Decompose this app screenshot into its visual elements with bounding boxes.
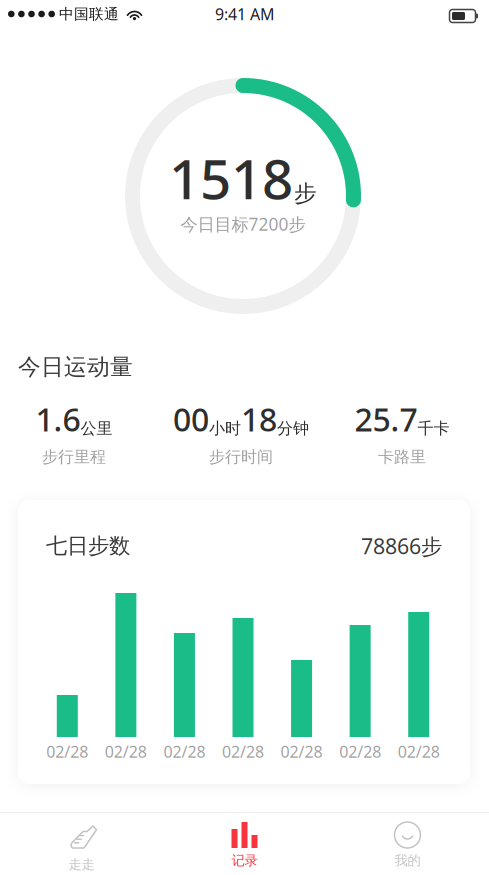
staticText: 00 <box>173 398 209 440</box>
staticText: 02/28 <box>222 741 264 762</box>
staticText: 02/28 <box>105 741 147 762</box>
staticText: 9:41 AM <box>215 3 275 25</box>
staticText: 02/28 <box>46 741 88 762</box>
staticText: 步 <box>294 179 317 207</box>
staticText: 1518 <box>169 142 293 214</box>
staticText: 25.7 <box>354 398 417 440</box>
button[interactable]: 走走 <box>0 813 163 875</box>
staticText: 记录 <box>231 852 257 869</box>
staticText: 02/28 <box>398 741 440 762</box>
staticText: 七日步数 <box>46 533 130 559</box>
button[interactable]: 我的 <box>326 813 489 875</box>
staticText: 走走 <box>68 856 94 873</box>
staticText: 02/28 <box>163 741 205 762</box>
staticText: 公里 <box>80 419 112 438</box>
staticText: 步行里程 <box>42 447 106 467</box>
staticText: 中国联通 <box>59 5 119 23</box>
staticText: 步行时间 <box>209 447 273 467</box>
staticText: 卡路里 <box>378 447 426 467</box>
staticText: 18 <box>241 398 277 440</box>
staticText: 今日目标7200步 <box>180 212 305 235</box>
staticText: 小时 <box>209 419 241 438</box>
staticText: 我的 <box>394 852 420 869</box>
staticText: 分钟 <box>277 419 309 438</box>
staticText: 02/28 <box>281 741 323 762</box>
staticText: 1.6 <box>35 398 80 440</box>
staticText: 02/28 <box>339 741 381 762</box>
staticText: 千卡 <box>417 419 449 438</box>
staticText: 今日运动量 <box>18 353 133 381</box>
staticText: 78866步 <box>361 532 442 560</box>
button[interactable]: 记录 <box>163 813 326 875</box>
